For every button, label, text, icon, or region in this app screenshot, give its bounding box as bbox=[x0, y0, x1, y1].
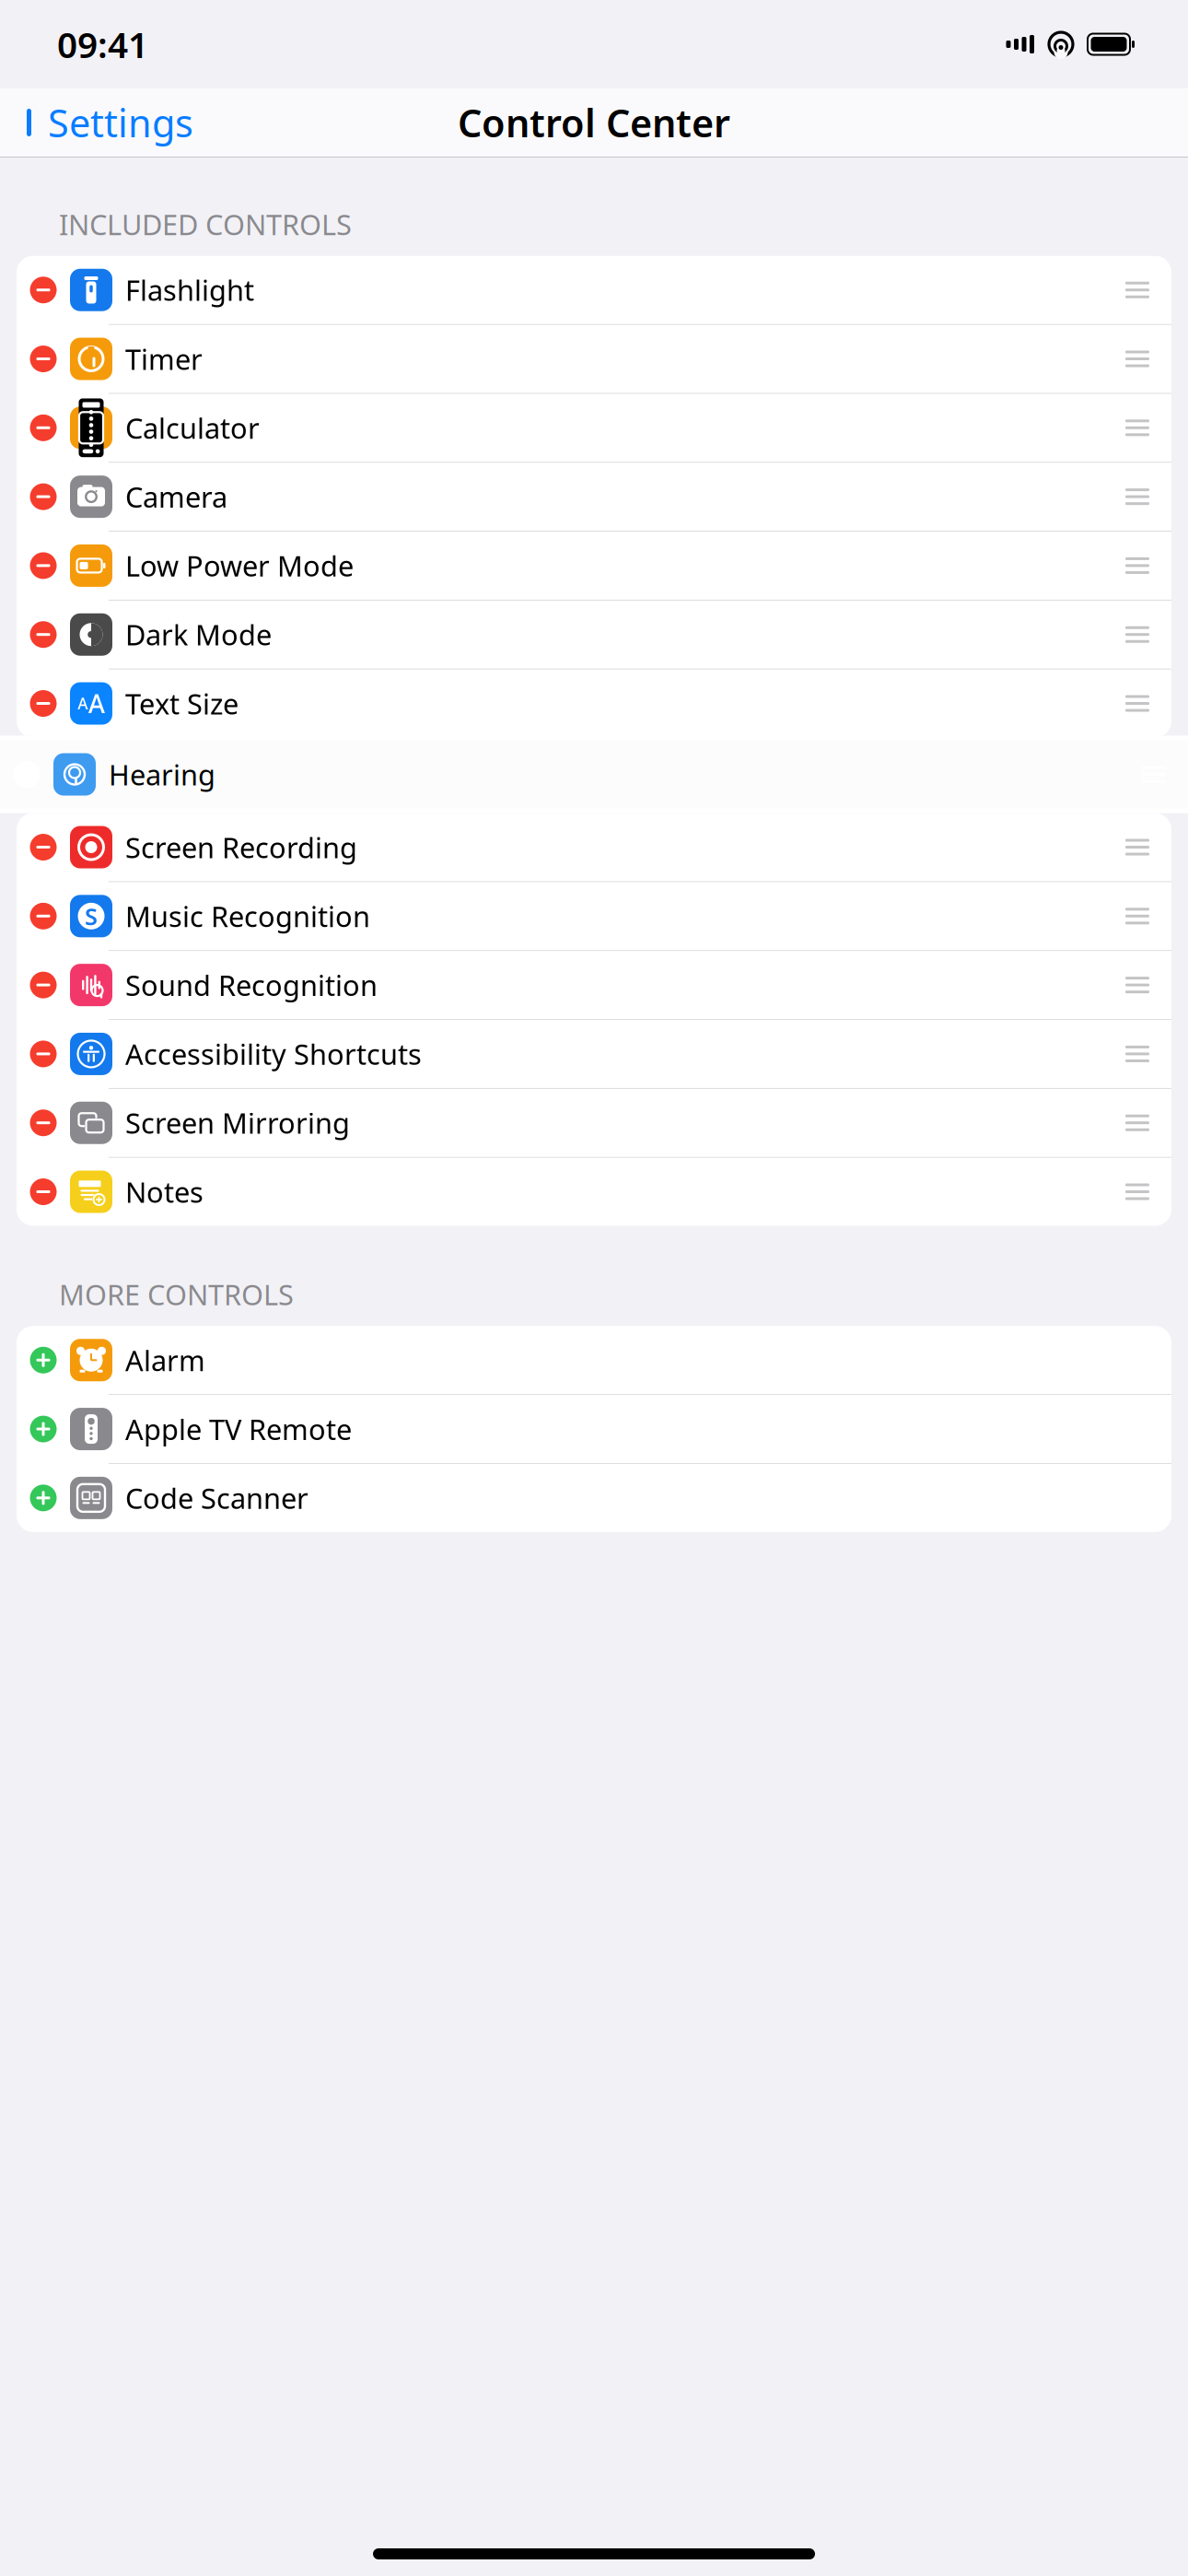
button[interactable]: Timer bbox=[17, 325, 1171, 394]
button[interactable]: Apple TV Remote bbox=[17, 1395, 1171, 1464]
button[interactable]: Remove Notes bbox=[17, 1158, 70, 1226]
staticText: Low Power Mode bbox=[125, 547, 354, 584]
button[interactable]: Remove Music Recognition bbox=[17, 882, 70, 950]
button[interactable]: Low Power Mode bbox=[17, 532, 1171, 600]
button[interactable]: Settings bbox=[0, 93, 206, 152]
staticText: Notes bbox=[125, 1173, 204, 1211]
staticText: Calculator bbox=[125, 409, 260, 447]
button[interactable]: Remove Sound Recognition bbox=[17, 951, 70, 1019]
button[interactable]: A bbox=[17, 669, 1171, 738]
button[interactable]: Add Code Scanner bbox=[17, 1464, 70, 1532]
staticText: Flashlight bbox=[125, 271, 254, 309]
staticText: Music Recognition bbox=[125, 897, 370, 935]
staticText: Timer bbox=[125, 340, 203, 378]
staticText: INCLUDED CONTROLS bbox=[59, 205, 352, 243]
button[interactable]: Code Scanner bbox=[17, 1464, 1171, 1532]
staticText: Code Scanner bbox=[125, 1479, 309, 1517]
staticText: Sound Recognition bbox=[125, 966, 378, 1004]
button[interactable]: Accessibility Shortcuts bbox=[17, 1020, 1171, 1089]
button[interactable]: Remove Timer bbox=[17, 325, 70, 393]
button[interactable]: Add Alarm bbox=[17, 1326, 70, 1394]
staticText: Accessibility Shortcuts bbox=[125, 1035, 422, 1073]
staticText: A bbox=[88, 686, 105, 721]
button[interactable]: Sound Recognition bbox=[17, 951, 1171, 1020]
staticText: Settings bbox=[48, 97, 193, 148]
staticText: 09:41 bbox=[57, 21, 148, 68]
button[interactable]: Dark Mode bbox=[17, 600, 1171, 669]
button[interactable]: Remove Low Power Mode bbox=[17, 532, 70, 600]
staticText: Screen Recording bbox=[125, 828, 357, 866]
staticText: A bbox=[78, 693, 88, 714]
staticText: MORE CONTROLS bbox=[59, 1276, 294, 1313]
button[interactable]: Remove Camera bbox=[17, 463, 70, 531]
button[interactable]: S bbox=[17, 882, 1171, 951]
staticText: Camera bbox=[125, 478, 227, 515]
staticText: Apple TV Remote bbox=[125, 1410, 352, 1448]
button[interactable]: Calculator bbox=[17, 394, 1171, 463]
button[interactable]: Screen Recording bbox=[17, 813, 1171, 882]
button[interactable]: Notes bbox=[17, 1158, 1171, 1226]
staticText: Text Size bbox=[125, 685, 239, 722]
button[interactable]: Remove Screen Recording bbox=[17, 813, 70, 881]
button[interactable]: Remove Text Size bbox=[17, 669, 70, 738]
staticText: Alarm bbox=[125, 1341, 205, 1379]
button[interactable]: Remove Dark Mode bbox=[17, 600, 70, 669]
button[interactable]: Screen Mirroring bbox=[17, 1089, 1171, 1158]
button[interactable]: Remove Flashlight bbox=[17, 256, 70, 324]
button[interactable]: Remove Calculator bbox=[17, 394, 70, 462]
staticText: Screen Mirroring bbox=[125, 1104, 350, 1142]
staticText: Control Center bbox=[458, 97, 730, 148]
button[interactable]: Flashlight bbox=[17, 256, 1171, 325]
staticText: Hearing bbox=[109, 756, 215, 793]
button[interactable]: Hearing bbox=[0, 740, 1188, 808]
button[interactable]: Remove Screen Mirroring bbox=[17, 1089, 70, 1157]
button[interactable]: Alarm bbox=[17, 1326, 1171, 1395]
button[interactable]: Camera bbox=[17, 463, 1171, 532]
staticText: S bbox=[85, 901, 98, 932]
button[interactable]: Remove Accessibility Shortcuts bbox=[17, 1020, 70, 1088]
staticText: Dark Mode bbox=[125, 616, 272, 653]
button[interactable]: Add Apple TV Remote bbox=[17, 1395, 70, 1463]
